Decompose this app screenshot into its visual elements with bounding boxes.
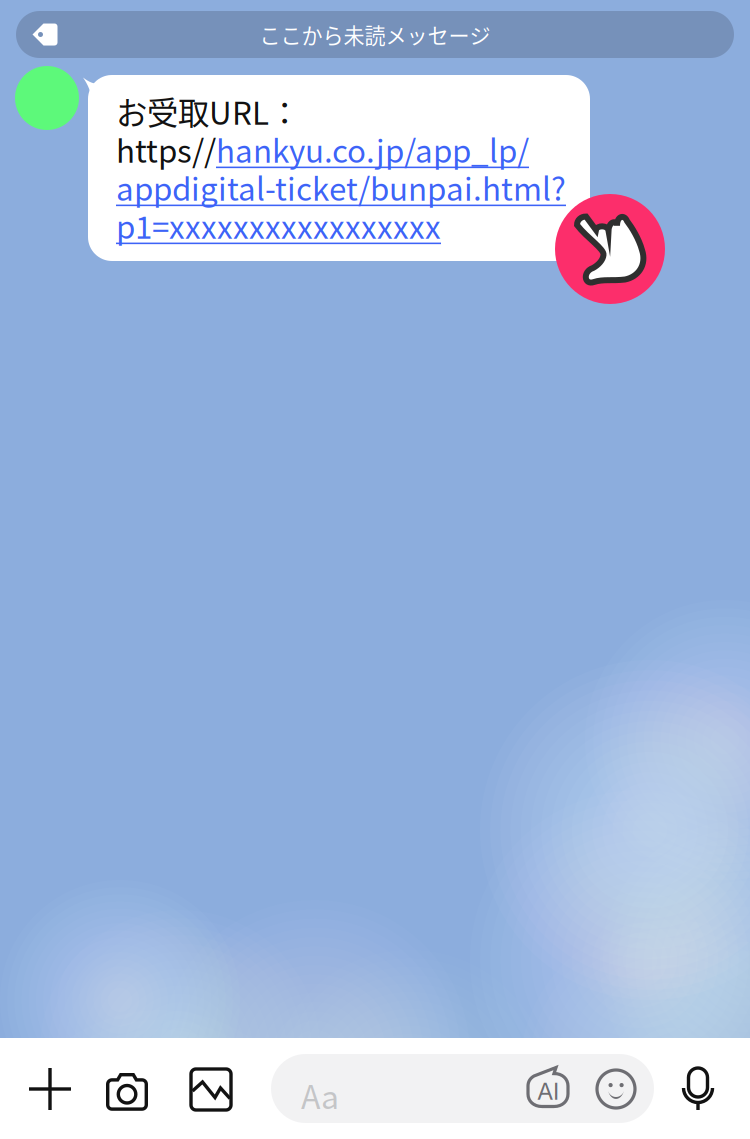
staticText: ここから未読メッセージ (259, 19, 490, 50)
staticText: p1=xxxxxxxxxxxxxxxxx (116, 202, 441, 248)
button[interactable]: ここから未読メッセージ (16, 11, 734, 58)
button[interactable]: お受取URL： (88, 75, 590, 261)
button[interactable]: Profile picture (15, 66, 79, 130)
staticText: hankyu.co.jp/app_lp/ (216, 126, 529, 172)
staticText: お受取URL： (116, 88, 300, 134)
button[interactable]: Photo library (191, 1069, 231, 1110)
staticText: appdigital-ticket/bunpai.html? (116, 164, 566, 210)
button[interactable]: Voice message (682, 1068, 714, 1111)
button[interactable]: Add attachment (25, 1064, 75, 1114)
button[interactable]: Aa (271, 1054, 654, 1123)
staticText: https// (116, 126, 216, 172)
staticText: Aa (301, 1072, 339, 1118)
staticText: AI (537, 1076, 559, 1105)
button[interactable]: Camera (106, 1073, 148, 1111)
